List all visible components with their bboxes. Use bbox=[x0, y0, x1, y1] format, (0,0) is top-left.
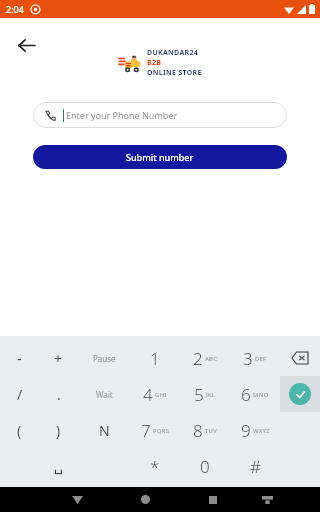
staticText: 6 bbox=[241, 383, 251, 406]
staticText: 5 bbox=[194, 383, 204, 406]
staticText: MNO bbox=[253, 391, 269, 399]
staticText: ONLINE STORE bbox=[147, 68, 202, 78]
button[interactable]: ␣ bbox=[39, 448, 78, 484]
button[interactable]: 9 bbox=[230, 412, 280, 448]
button[interactable]: Wait bbox=[78, 376, 130, 412]
staticText: 8 bbox=[193, 419, 203, 442]
button[interactable]: 0 bbox=[180, 448, 230, 484]
staticText: TUV bbox=[205, 427, 217, 435]
button[interactable]: . bbox=[39, 376, 78, 412]
staticText: Wait bbox=[96, 389, 113, 400]
button[interactable]: ( bbox=[0, 412, 39, 448]
button[interactable]: # bbox=[230, 448, 280, 484]
button[interactable]: * bbox=[130, 448, 180, 484]
staticText: 4 bbox=[143, 383, 153, 406]
staticText: ( bbox=[17, 421, 22, 440]
button[interactable]: Enter your Phone Number bbox=[33, 102, 287, 128]
button[interactable]: + bbox=[39, 340, 78, 376]
staticText: Submit number bbox=[126, 151, 194, 163]
staticText: GHI bbox=[155, 391, 167, 399]
button[interactable]: Submit number bbox=[33, 145, 287, 169]
staticText: + bbox=[54, 349, 63, 368]
button[interactable]: Backspace bbox=[280, 340, 320, 376]
staticText: N bbox=[99, 421, 110, 440]
staticText: 9 bbox=[241, 419, 251, 442]
staticText: 2:04 bbox=[6, 3, 24, 15]
staticText: # bbox=[250, 455, 261, 478]
button[interactable]: Confirm bbox=[280, 376, 320, 412]
staticText: ␣ bbox=[54, 458, 63, 474]
staticText: PQRS bbox=[153, 427, 170, 435]
staticText: 3 bbox=[243, 347, 253, 370]
button[interactable]: Recent apps bbox=[198, 487, 228, 512]
staticText: Enter your Phone Number bbox=[66, 109, 178, 121]
button[interactable]: 3 bbox=[230, 340, 280, 376]
staticText: * bbox=[150, 455, 160, 478]
button[interactable]: Switch input method bbox=[252, 487, 282, 512]
staticText: 0 bbox=[200, 455, 210, 478]
button[interactable]: 7 bbox=[130, 412, 180, 448]
staticText: 2 bbox=[193, 347, 203, 370]
staticText: DEF bbox=[255, 355, 267, 363]
staticText: 1 bbox=[150, 347, 160, 370]
staticText: - bbox=[17, 349, 22, 368]
staticText: 7 bbox=[141, 419, 151, 442]
staticText: / bbox=[17, 385, 23, 404]
button[interactable]: 8 bbox=[180, 412, 230, 448]
staticText: Pause bbox=[93, 353, 116, 364]
staticText: B2B bbox=[147, 58, 162, 68]
button[interactable]: - bbox=[0, 340, 39, 376]
button[interactable]: 4 bbox=[130, 376, 180, 412]
button[interactable]: Hide keyboard bbox=[62, 487, 92, 512]
button[interactable]: Home bbox=[130, 487, 160, 512]
button[interactable]: 6 bbox=[230, 376, 280, 412]
staticText: . bbox=[57, 385, 61, 404]
button[interactable]: Pause bbox=[78, 340, 130, 376]
button[interactable]: N bbox=[78, 412, 130, 448]
button[interactable]: 1 bbox=[130, 340, 180, 376]
button[interactable]: / bbox=[0, 376, 39, 412]
staticText: JKL bbox=[206, 391, 216, 399]
staticText: ABC bbox=[205, 355, 218, 363]
staticText: WXYZ bbox=[253, 427, 270, 435]
button[interactable]: 5 bbox=[180, 376, 230, 412]
staticText: DUKANDAR24 bbox=[147, 48, 199, 58]
button[interactable]: ) bbox=[39, 412, 78, 448]
staticText: ) bbox=[56, 421, 61, 440]
button[interactable]: Back bbox=[8, 27, 44, 63]
button[interactable]: 2 bbox=[180, 340, 230, 376]
